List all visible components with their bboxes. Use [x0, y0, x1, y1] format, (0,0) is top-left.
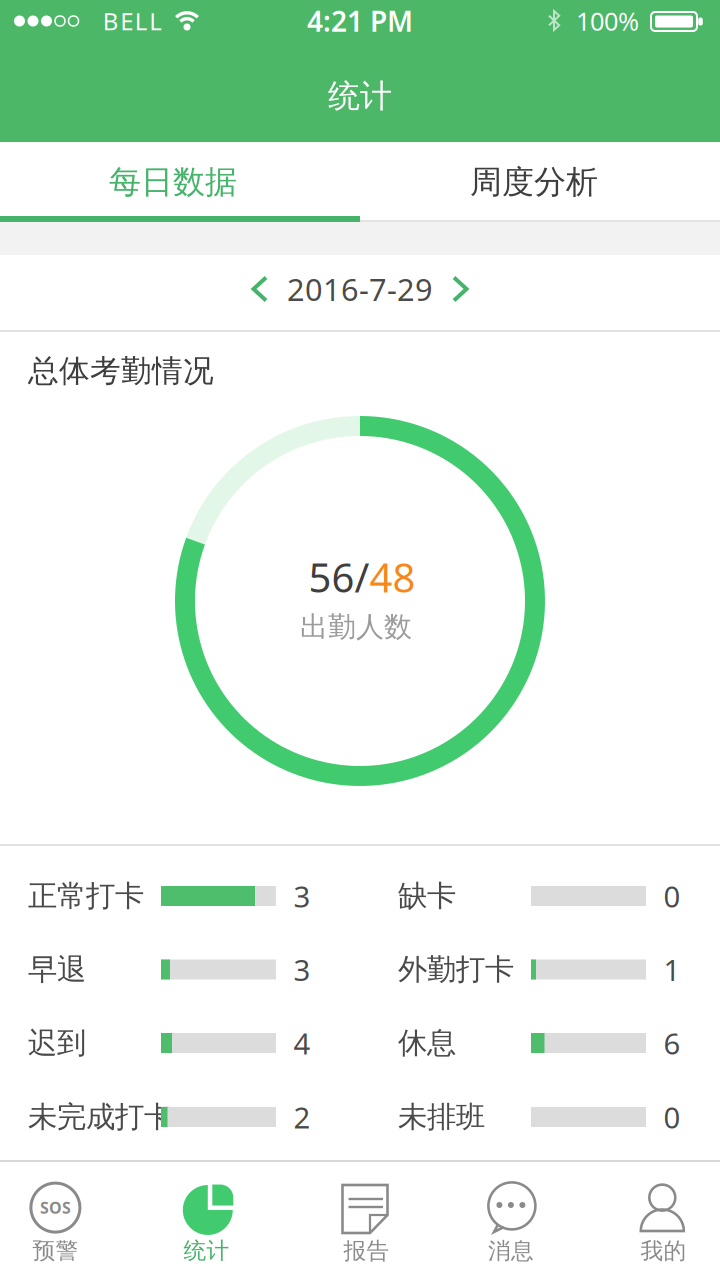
staticText: 早退	[28, 951, 86, 987]
staticText: 4:21 PM	[307, 2, 413, 40]
staticText: 未完成打卡	[28, 1099, 173, 1135]
staticText: 6	[663, 1023, 680, 1062]
staticText: 休息	[398, 1025, 456, 1061]
staticText: 56/	[308, 550, 369, 603]
staticText: 消息	[488, 1237, 534, 1265]
staticText: 迟到	[28, 1025, 86, 1061]
staticText: 0	[663, 1097, 680, 1136]
staticText: 我的	[640, 1237, 686, 1265]
staticText: 0	[663, 876, 680, 915]
staticText: BELL	[103, 5, 162, 37]
staticText: 统计	[328, 76, 392, 116]
staticText: 统计	[183, 1237, 229, 1264]
staticText: SOS	[40, 1197, 71, 1218]
staticText: 每日数据	[109, 162, 237, 202]
staticText: 未排班	[398, 1099, 485, 1135]
staticText: 出勤人数	[300, 610, 412, 644]
staticText: 缺卡	[398, 878, 456, 914]
staticText: 4	[293, 1023, 310, 1062]
staticText: 3	[293, 876, 310, 915]
staticText: 周度分析	[470, 162, 598, 202]
staticText: 预警	[32, 1237, 78, 1264]
staticText: 总体考勤情况	[28, 352, 214, 390]
staticText: 2016-7-29	[287, 269, 433, 309]
staticText: 48	[369, 550, 415, 603]
staticText: 2	[293, 1097, 310, 1136]
staticText: 1	[663, 950, 680, 989]
staticText: 报告	[343, 1237, 389, 1265]
staticText: 3	[293, 950, 310, 989]
staticText: 外勤打卡	[398, 951, 514, 987]
staticText: 正常打卡	[28, 878, 144, 914]
staticText: 100%	[576, 4, 639, 38]
